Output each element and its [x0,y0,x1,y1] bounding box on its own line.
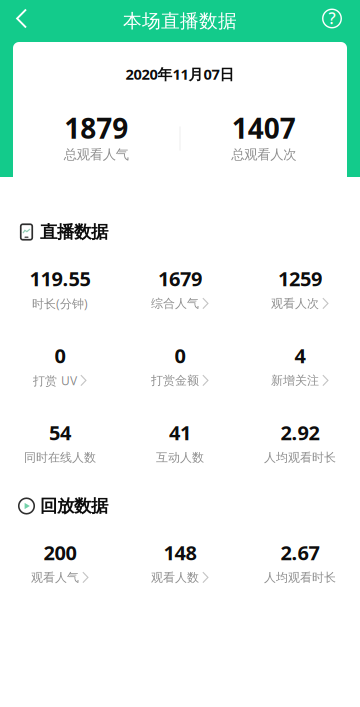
staticText: 148 [163,539,196,566]
staticText: 人均观看时长 [264,570,336,585]
button[interactable]: 4 [240,346,360,388]
staticText: 打赏金额 [151,373,199,388]
staticText: 1679 [158,265,202,292]
staticText: 互动人数 [156,450,204,465]
button[interactable]: Help [303,0,360,42]
staticText: 54 [49,419,71,446]
staticText: 41 [169,419,191,446]
button[interactable]: 0 [0,346,120,388]
staticText: 打赏 UV [33,372,77,388]
staticText: 4 [294,342,305,369]
button[interactable]: 1259 [240,269,360,311]
button[interactable]: Back [0,0,57,42]
staticText: 总观看人次 [231,146,296,163]
button[interactable]: 148 [120,543,240,585]
button[interactable]: 2.92 [240,423,360,465]
button[interactable]: 41 [120,423,240,465]
staticText: 0 [54,342,65,369]
staticText: 时长(分钟) [32,295,88,311]
button[interactable]: 54 [0,423,120,465]
staticText: 人均观看时长 [264,450,336,465]
staticText: 0 [174,342,185,369]
staticText: 2020年11月07日 [125,64,234,84]
staticText: 2.67 [280,539,319,566]
staticText: 综合人气 [151,296,199,311]
staticText: 2.92 [280,419,319,446]
staticText: 200 [43,539,76,566]
button[interactable]: 2.67 [240,543,360,585]
staticText: 总观看人气 [64,146,129,163]
staticText: 1259 [278,265,322,292]
button[interactable]: 200 [0,543,120,585]
staticText: 观看人次 [271,296,319,311]
staticText: ? [328,7,335,29]
staticText: 观看人数 [151,570,199,585]
staticText: 直播数据 [40,221,108,243]
button[interactable]: 1679 [120,269,240,311]
staticText: 同时在线人数 [24,450,96,465]
staticText: 119.55 [29,265,90,292]
staticText: 本场直播数据 [123,9,237,32]
staticText: 新增关注 [271,373,319,388]
staticText: 回放数据 [40,495,108,517]
button[interactable]: 119.55 [0,269,120,311]
staticText: 1879 [64,109,128,147]
staticText: 观看人气 [31,570,79,585]
button[interactable]: 0 [120,346,240,388]
staticText: 1407 [232,109,296,147]
